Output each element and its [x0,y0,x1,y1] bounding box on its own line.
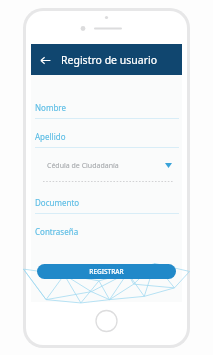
button[interactable]: Contraseña [31,225,182,237]
button[interactable]: Documento [31,196,182,214]
button[interactable]: Apellido [31,130,182,148]
staticText: Nombre [35,102,66,113]
staticText: REGISTRAR [89,267,124,276]
button[interactable]: Back [36,51,54,69]
staticText: Registro de usuario [61,53,158,67]
staticText: Cédula de Ciudadanía [47,161,165,171]
staticText: Documento [35,197,80,208]
staticText: Contraseña [35,226,79,237]
button[interactable]: REGISTRAR [37,264,176,279]
button[interactable]: Nombre [31,101,182,119]
button[interactable]: Cédula de Ciudadanía [35,158,178,182]
staticText: Apellido [35,131,66,142]
